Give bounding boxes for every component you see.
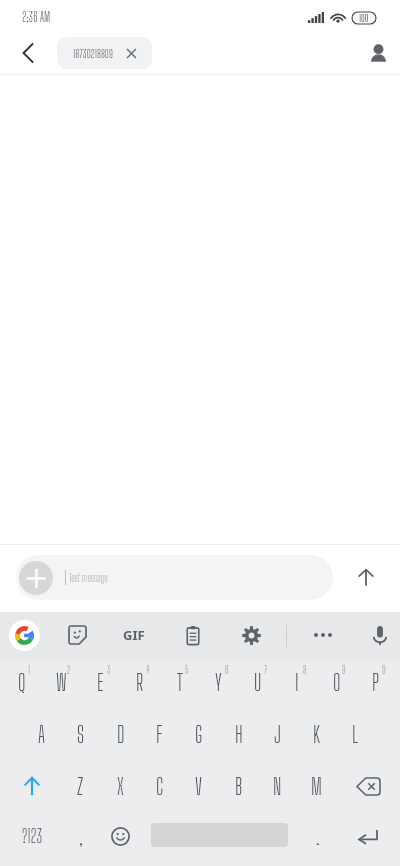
button[interactable]: More options [304, 616, 342, 654]
button[interactable]: J [258, 709, 297, 759]
staticText: M [311, 772, 322, 800]
staticText: 0 [382, 663, 386, 676]
button[interactable]: N [258, 761, 297, 811]
staticText: K [313, 720, 321, 748]
button[interactable]: Back [6, 31, 50, 75]
button[interactable]: Backspace [339, 761, 398, 811]
button[interactable]: ?123 [6, 811, 58, 861]
button[interactable]: Google [5, 616, 43, 654]
button[interactable]: Q [2, 658, 41, 708]
button[interactable]: W [42, 658, 81, 708]
staticText: 18730218809 [73, 46, 113, 60]
button[interactable]: A [22, 709, 61, 759]
button[interactable]: K [297, 709, 336, 759]
staticText: Q [18, 668, 26, 696]
button[interactable]: R [120, 658, 159, 708]
staticText: ?123 [22, 825, 43, 847]
button[interactable]: GIF [115, 616, 153, 654]
button[interactable]: Y [199, 658, 238, 708]
staticText: P [372, 668, 379, 696]
button[interactable]: M [297, 761, 336, 811]
button[interactable]: F [140, 709, 179, 759]
button[interactable]: H [219, 709, 258, 759]
staticText: V [195, 772, 203, 800]
button[interactable]: Clipboard [174, 616, 212, 654]
staticText: 6 [225, 663, 229, 676]
button[interactable]: Shift [2, 761, 61, 811]
staticText: N [273, 772, 282, 800]
button[interactable]: I [277, 658, 316, 708]
staticText: E [97, 668, 104, 696]
button[interactable]: X [101, 761, 140, 811]
button[interactable]: U [238, 658, 277, 708]
button[interactable]: D [101, 709, 140, 759]
staticText: 2:36 AM [22, 9, 51, 25]
staticText: Z [77, 772, 84, 800]
button[interactable]: Stickers [58, 616, 96, 654]
button[interactable]: P [356, 658, 395, 708]
staticText: , [79, 825, 83, 849]
button[interactable]: E [81, 658, 120, 708]
button[interactable]: O [317, 658, 356, 708]
staticText: F [156, 720, 163, 748]
button[interactable]: Add attachment [19, 561, 53, 595]
staticText: B [235, 772, 243, 800]
staticText: S [77, 720, 85, 748]
button[interactable]: , [61, 811, 101, 861]
button[interactable]: B [219, 761, 258, 811]
button[interactable]: Voice input [361, 616, 399, 654]
staticText: T [177, 668, 183, 696]
button[interactable]: Enter [340, 811, 396, 861]
staticText: I [295, 668, 299, 696]
staticText: 7 [264, 663, 268, 676]
staticText: 8 [303, 663, 307, 676]
staticText: 3 [107, 663, 111, 676]
button[interactable]: T [160, 658, 199, 708]
staticText: O [333, 668, 341, 696]
button[interactable]: Contact details [356, 31, 400, 75]
staticText: 100 [359, 12, 369, 24]
staticText: 5 [185, 663, 189, 676]
staticText: U [254, 668, 262, 696]
button[interactable]: Settings [232, 616, 270, 654]
button[interactable]: C [140, 761, 179, 811]
button[interactable]: L [336, 709, 375, 759]
button[interactable]: Z [61, 761, 100, 811]
button[interactable]: 18730218809 [57, 37, 152, 69]
staticText: L [352, 720, 359, 748]
button[interactable]: Send [344, 555, 388, 599]
staticText: X [117, 772, 124, 800]
staticText: A [38, 720, 46, 748]
staticText: J [274, 720, 281, 748]
staticText: R [136, 668, 144, 696]
staticText: Text message [69, 571, 108, 584]
staticText: 1 [28, 663, 30, 676]
staticText: 2 [67, 663, 71, 676]
staticText: . [316, 825, 320, 849]
button[interactable]: S [61, 709, 100, 759]
button[interactable]: Add attachment [16, 555, 333, 600]
button[interactable]: V [179, 761, 218, 811]
button[interactable]: G [179, 709, 218, 759]
staticText: W [56, 668, 67, 696]
button[interactable]: . [298, 811, 338, 861]
staticText: G [195, 720, 203, 748]
staticText: C [156, 772, 164, 800]
staticText: 4 [146, 663, 150, 676]
staticText: 9 [342, 663, 346, 676]
staticText: D [117, 720, 125, 748]
staticText: H [235, 720, 243, 748]
staticText: GIF [123, 626, 145, 644]
staticText: Y [215, 668, 222, 696]
button[interactable]: Emoji [100, 811, 140, 861]
